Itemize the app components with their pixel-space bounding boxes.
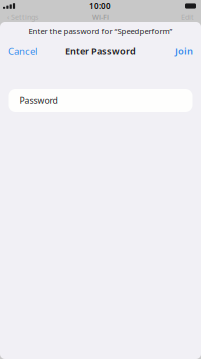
staticText: ‹ Settings [7, 12, 38, 22]
staticText: Join [175, 45, 193, 57]
staticText: Enter the password for “Speedperform” [28, 26, 172, 36]
staticText: Wi-Fi [92, 12, 109, 22]
staticText: Cancel [8, 44, 37, 58]
button[interactable]: Password [8, 89, 192, 112]
staticText: Enter Password [65, 45, 136, 57]
staticText: 10:00 [89, 1, 111, 11]
button[interactable]: Join [167, 40, 201, 62]
staticText: Password [19, 95, 57, 106]
staticText: Edit [181, 12, 194, 22]
button[interactable]: Cancel [0, 40, 45, 62]
